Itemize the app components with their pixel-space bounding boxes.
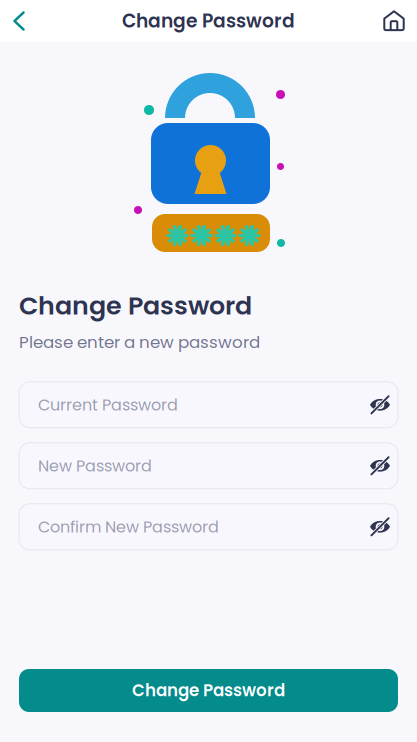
staticText: Change Password — [19, 288, 252, 323]
staticText: Change Password — [132, 679, 285, 702]
staticText: Confirm New Password — [38, 516, 219, 538]
button[interactable]: Show New Password — [362, 443, 398, 489]
button[interactable]: Back — [4, 0, 34, 42]
button[interactable]: Change Password — [19, 669, 398, 712]
staticText: Current Password — [38, 394, 178, 416]
button[interactable]: Show Current Password — [362, 382, 398, 428]
staticText: Change Password — [122, 8, 295, 34]
button[interactable]: Show Confirm New Password — [362, 504, 398, 550]
staticText: Please enter a new password — [19, 330, 260, 354]
button[interactable]: Home — [375, 0, 413, 42]
staticText: New Password — [38, 455, 152, 477]
